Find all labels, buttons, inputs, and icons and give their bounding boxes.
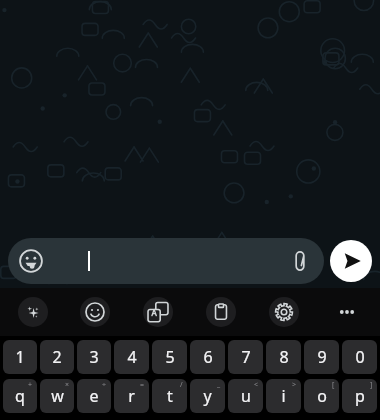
button[interactable]: More options [332, 297, 362, 327]
staticText: ÷ [102, 380, 107, 390]
button[interactable]: 5 [152, 340, 187, 374]
staticText: 8 [279, 346, 289, 368]
staticText: = [140, 380, 145, 390]
staticText: 1 [15, 346, 25, 368]
button[interactable]: e [77, 379, 111, 413]
staticText: 5 [165, 346, 175, 368]
staticText: 2 [52, 346, 62, 368]
button[interactable]: w [40, 379, 74, 413]
staticText: × [65, 380, 70, 390]
staticText: r [128, 385, 135, 407]
staticText: < [254, 380, 259, 390]
button[interactable]: Stickers [18, 248, 44, 274]
button[interactable]: 8 [266, 340, 301, 374]
button[interactable]: 2 [40, 340, 74, 374]
button[interactable]: r [114, 379, 149, 413]
button[interactable]: y [190, 379, 225, 413]
button[interactable]: 6 [190, 340, 225, 374]
button[interactable]: p [342, 379, 377, 413]
staticText: 0 [355, 346, 365, 368]
staticText: _ [217, 380, 221, 390]
staticText: [ [332, 380, 335, 390]
staticText: 4 [127, 346, 137, 368]
button[interactable]: q [3, 379, 37, 413]
staticText: ] [370, 380, 373, 390]
staticText: + [28, 380, 33, 390]
staticText: 3 [89, 346, 99, 368]
button[interactable]: 0 [342, 340, 377, 374]
staticText: q [15, 385, 25, 407]
button[interactable]: Attach [288, 249, 312, 273]
staticText: t [167, 385, 173, 407]
button[interactable]: 9 [304, 340, 339, 374]
button[interactable]: Emoji [80, 297, 110, 327]
button[interactable]: t [152, 379, 187, 413]
staticText: 9 [317, 346, 327, 368]
button[interactable]: Stickers [8, 238, 324, 284]
button[interactable]: 1 [3, 340, 37, 374]
staticText: o [317, 385, 327, 407]
button[interactable]: i [266, 379, 301, 413]
button[interactable]: 7 [228, 340, 263, 374]
button[interactable]: Send [330, 240, 372, 282]
staticText: / [180, 380, 183, 390]
staticText: u [241, 385, 251, 407]
button[interactable]: Translate [143, 297, 173, 327]
staticText: > [292, 380, 297, 390]
staticText: p [355, 385, 365, 407]
button[interactable]: u [228, 379, 263, 413]
staticText: w [51, 385, 64, 407]
button[interactable]: 4 [114, 340, 149, 374]
button[interactable]: AI suggestions [18, 297, 48, 327]
staticText: e [89, 385, 99, 407]
button[interactable]: 3 [77, 340, 111, 374]
staticText: 6 [203, 346, 213, 368]
staticText: i [281, 385, 286, 407]
button[interactable]: Settings [269, 297, 299, 327]
staticText: y [203, 385, 212, 407]
staticText: 7 [241, 346, 251, 368]
button[interactable]: o [304, 379, 339, 413]
button[interactable]: Clipboard [206, 297, 236, 327]
